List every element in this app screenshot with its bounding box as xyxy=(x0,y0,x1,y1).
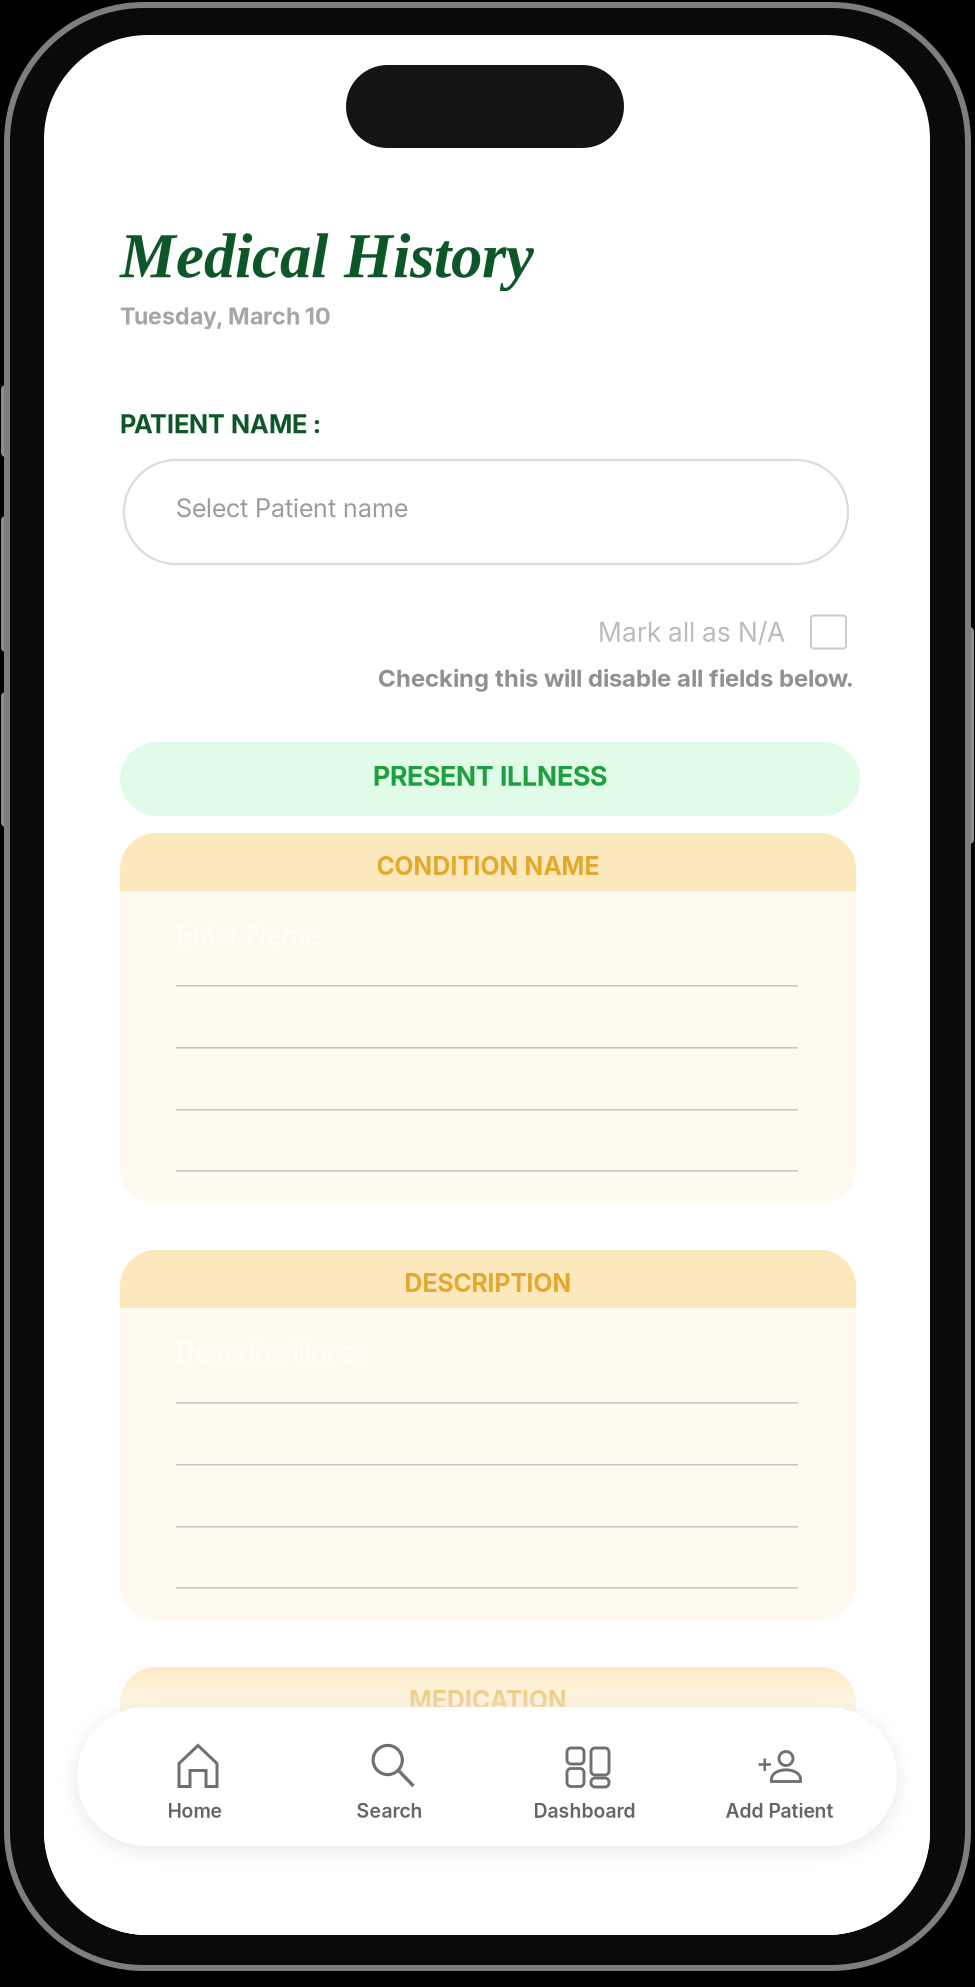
button[interactable]: Home xyxy=(97,1707,292,1846)
staticText: Checking this will disable all fields be… xyxy=(378,663,854,692)
button[interactable]: Search xyxy=(292,1707,487,1846)
staticText: Medical History xyxy=(120,221,534,291)
staticText: PRESENT ILLNESS xyxy=(373,760,607,792)
staticText: Describe illness xyxy=(176,1336,369,1368)
staticText: DESCRIPTION xyxy=(404,1268,571,1298)
staticText: CONDITION NAME xyxy=(376,851,599,881)
button[interactable]: Add Patient xyxy=(682,1707,877,1846)
staticText: Dashboard xyxy=(533,1799,635,1822)
staticText: Add Patient xyxy=(725,1799,833,1822)
staticText: MEDICATION xyxy=(409,1685,567,1715)
staticText: Home xyxy=(167,1799,221,1822)
staticText: PATIENT NAME : xyxy=(120,409,321,439)
button[interactable]: Dashboard xyxy=(487,1707,682,1846)
staticText: Tuesday, March 10 xyxy=(120,302,331,330)
staticText: Search xyxy=(356,1799,422,1822)
staticText: Select Patient name xyxy=(176,493,408,523)
staticText: Enter Name xyxy=(176,919,320,951)
staticText: Mark all as N/A xyxy=(598,616,785,648)
staticText: Medication xyxy=(176,1753,313,1785)
